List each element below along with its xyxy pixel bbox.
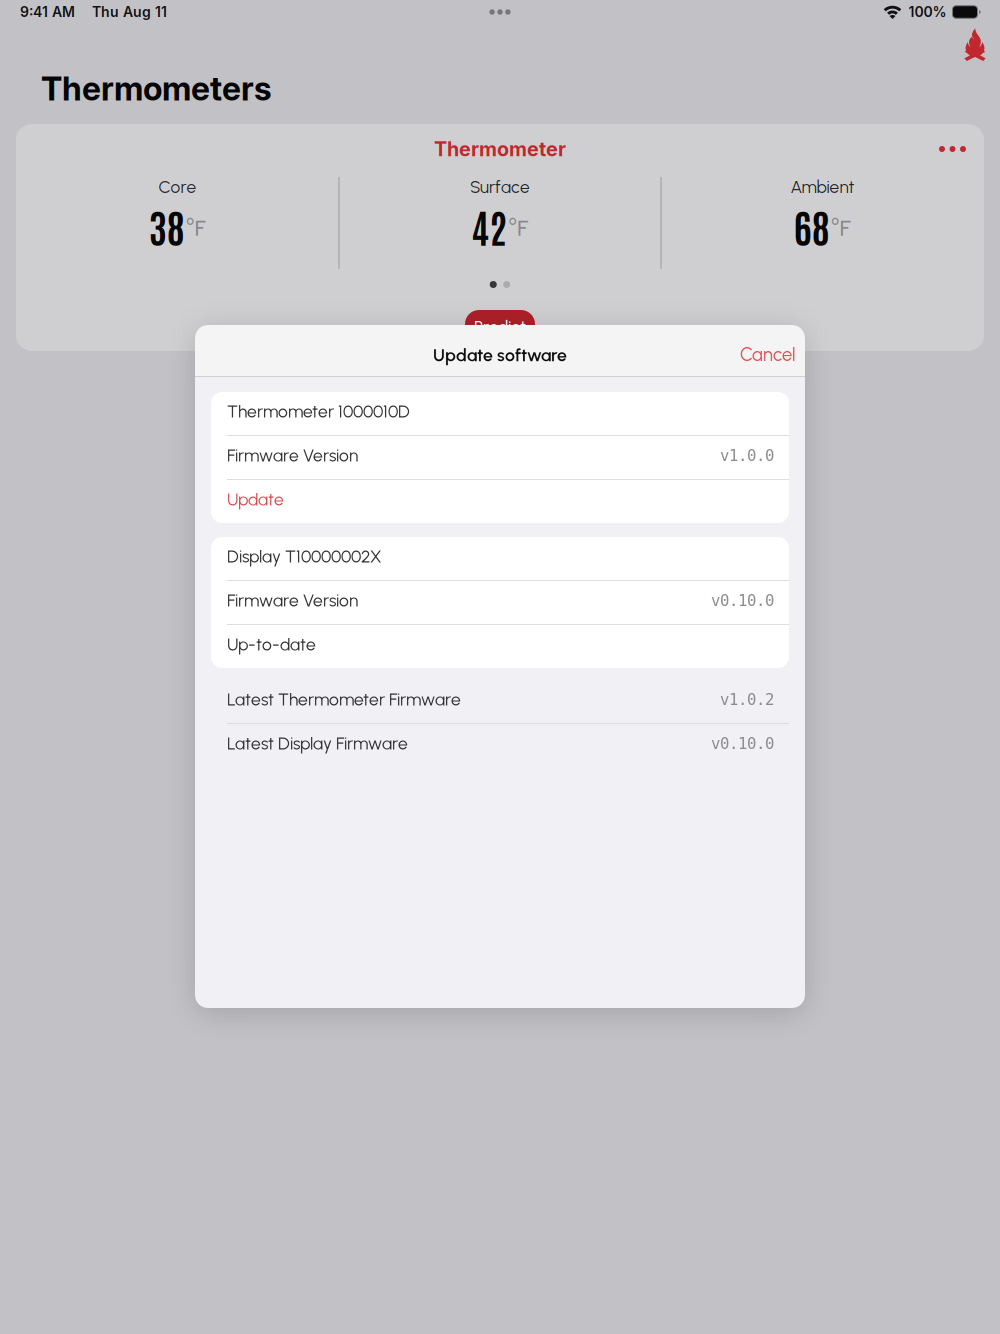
button[interactable]: Firmware Version <box>211 581 789 624</box>
button[interactable]: Latest Display Firmware <box>211 724 789 767</box>
staticText: 9:41 AM <box>20 3 75 20</box>
staticText: Firmware Version <box>227 590 358 611</box>
staticText: Update software <box>433 344 567 365</box>
staticText: 68 <box>794 201 830 251</box>
staticText: Latest Display Firmware <box>227 733 408 754</box>
staticText: v1.0.0 <box>720 446 774 465</box>
staticText: °F <box>186 215 206 240</box>
staticText: Up-to-date <box>227 634 316 655</box>
button[interactable]: Firmware Version <box>211 436 789 479</box>
staticText: 100% <box>908 3 946 20</box>
button[interactable]: Cancel <box>731 326 804 374</box>
button[interactable]: Thermometer 1000010D <box>211 392 789 435</box>
staticText: v1.0.2 <box>720 690 774 709</box>
button[interactable]: Update <box>211 480 789 523</box>
button[interactable]: Latest Thermometer Firmware <box>211 680 789 723</box>
staticText: Display T10000002X <box>227 546 381 567</box>
button[interactable]: Up-to-date <box>211 625 789 668</box>
staticText: Thermometer 1000010D <box>227 401 410 422</box>
staticText: °F <box>509 215 529 240</box>
staticText: 38 <box>149 201 185 251</box>
staticText: Ambient <box>790 177 854 197</box>
button[interactable]: Display T10000002X <box>211 537 789 580</box>
staticText: Latest Thermometer Firmware <box>227 689 461 710</box>
staticText: 42 <box>471 201 507 251</box>
staticText: v0.10.0 <box>711 591 774 610</box>
staticText: Thermometers <box>41 69 272 108</box>
staticText: Predict <box>474 317 526 337</box>
button[interactable]: More options <box>930 137 975 161</box>
staticText: Thu Aug 11 <box>92 3 167 20</box>
staticText: Cancel <box>740 343 795 365</box>
staticText: Thermometer <box>434 137 566 161</box>
button[interactable]: Predict <box>465 310 535 344</box>
staticText: Surface <box>470 177 530 197</box>
staticText: Firmware Version <box>227 445 358 466</box>
staticText: Update <box>227 489 284 510</box>
button[interactable]: Campfire <box>964 25 986 61</box>
staticText: v0.10.0 <box>711 734 774 753</box>
staticText: °F <box>831 215 851 240</box>
staticText: Core <box>158 177 196 197</box>
